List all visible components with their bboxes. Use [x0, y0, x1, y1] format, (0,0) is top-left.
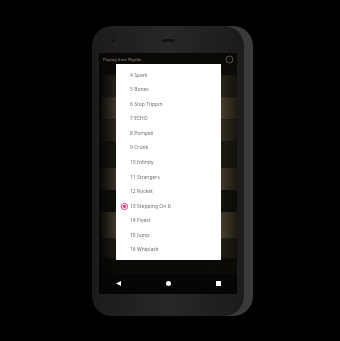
button[interactable]: More options: [225, 55, 234, 64]
button[interactable]: 15 Jump: [116, 228, 221, 242]
button[interactable]: 12 Rocket: [116, 184, 221, 198]
button[interactable]: 7 ECHO: [116, 111, 221, 125]
staticText: Playing from Playlist: [103, 57, 225, 62]
staticText: 11 Strangers: [130, 174, 160, 181]
button[interactable]: 4 Spark: [116, 68, 221, 82]
button[interactable]: 6 Stop Trippin: [116, 97, 221, 111]
staticText: 16 Whiplash: [130, 246, 159, 253]
staticText: 12 Rocket: [130, 188, 153, 195]
staticText: 9 Crunk: [130, 144, 149, 151]
button[interactable]: 16 Whiplash: [116, 242, 221, 256]
button[interactable]: Home: [162, 277, 174, 289]
button[interactable]: Recent apps: [212, 277, 224, 289]
staticText: 15 Jump: [130, 232, 150, 239]
button[interactable]: Back: [112, 277, 124, 289]
staticText: 14 Flyest: [130, 217, 151, 224]
button[interactable]: 13 Stepping On It: [116, 199, 221, 213]
staticText: 13 Stepping On It: [130, 203, 172, 210]
button[interactable]: 14 Flyest: [116, 213, 221, 227]
button[interactable]: 11 Strangers: [116, 170, 221, 184]
staticText: 5 Bones: [130, 86, 149, 93]
button[interactable]: 8 Pompeii: [116, 126, 221, 140]
button[interactable]: 5 Bones: [116, 82, 221, 96]
staticText: 6 Stop Trippin: [130, 101, 163, 108]
button[interactable]: 10 Infinity: [116, 155, 221, 169]
staticText: 10 Infinity: [130, 159, 154, 166]
button[interactable]: 9 Crunk: [116, 140, 221, 154]
staticText: 4 Spark: [130, 72, 148, 79]
staticText: 7 ECHO: [130, 115, 148, 122]
staticText: 8 Pompeii: [130, 130, 154, 137]
